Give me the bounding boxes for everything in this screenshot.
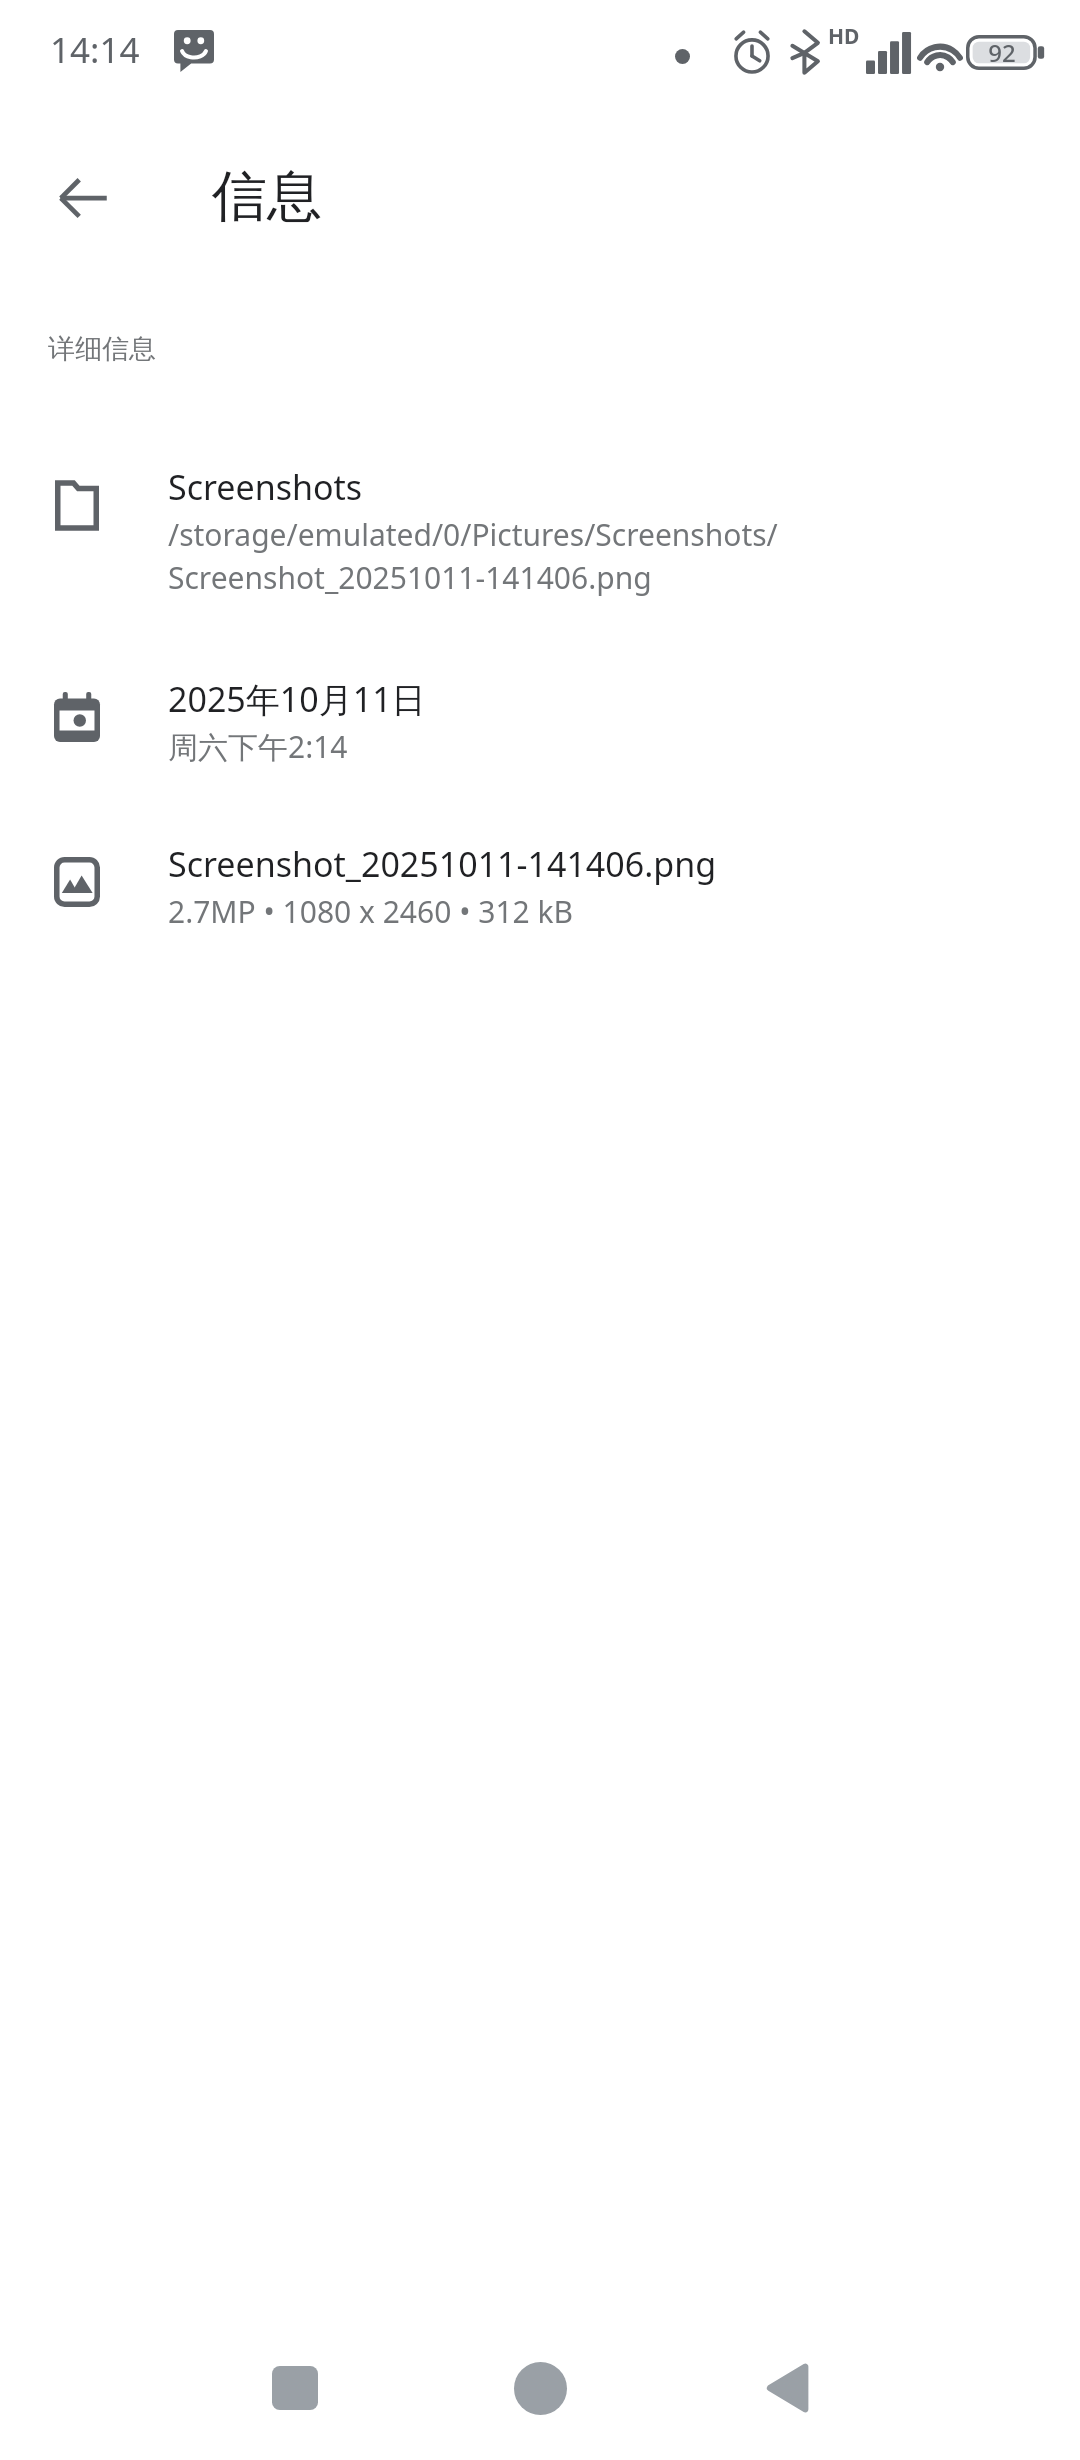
staticText: 2025年10月11日 (168, 676, 426, 722)
staticText: 信息 (212, 162, 322, 231)
staticText: 周六下午2:14 (168, 726, 348, 767)
button[interactable]: Home (494, 2342, 586, 2434)
staticText: 详细信息 (48, 332, 156, 366)
staticText: 2.7MP • 1080 x 2460 • 312 kB (168, 891, 574, 932)
button[interactable]: Screenshot_20251011-141406.png (0, 835, 1080, 938)
staticText: Screenshots (168, 464, 363, 510)
button[interactable]: 2025年10月11日 (0, 670, 1080, 773)
staticText: 14:14 (50, 26, 140, 74)
staticText: 92 (988, 36, 1016, 69)
button[interactable]: Back (38, 152, 128, 242)
staticText: /storage/emulated/0/Pictures/Screenshots… (168, 514, 778, 598)
button[interactable]: Screenshots (0, 458, 1080, 604)
staticText: Screenshot_20251011-141406.png (168, 841, 717, 887)
button[interactable]: Recent apps (249, 2342, 341, 2434)
staticText: HD (828, 22, 860, 51)
button[interactable]: Back (741, 2342, 833, 2434)
